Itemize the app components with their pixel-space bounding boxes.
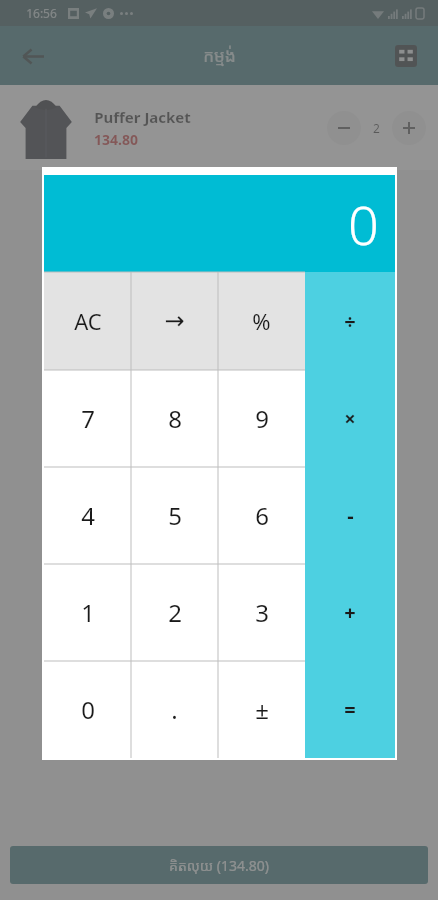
staticText: + <box>344 599 356 626</box>
staticText: 7 <box>81 402 95 435</box>
button[interactable]: 2 <box>131 564 218 661</box>
button[interactable]: ÷ <box>305 272 395 370</box>
button[interactable]: . <box>131 661 218 758</box>
staticText: គិតលុយ (134.80) <box>169 856 269 875</box>
button[interactable]: + <box>305 564 395 661</box>
staticText: = <box>344 696 356 723</box>
button[interactable]: 5 <box>131 467 218 564</box>
button[interactable]: 6 <box>218 467 305 564</box>
button[interactable]: AC <box>44 272 131 370</box>
staticText: . <box>171 693 178 726</box>
staticText: កម្មង់ <box>203 44 236 67</box>
staticText: 0 <box>348 187 379 261</box>
staticText: % <box>252 306 271 336</box>
staticText: 8 <box>168 402 182 435</box>
staticText: ± <box>255 693 269 726</box>
staticText: AC <box>74 306 102 336</box>
staticText: 3 <box>255 596 269 629</box>
staticText: 1 <box>81 596 95 629</box>
button[interactable]: 7 <box>44 370 131 467</box>
button[interactable]: - <box>305 467 395 564</box>
button[interactable]: គិតលុយ (134.80) <box>10 846 428 884</box>
button[interactable]: × <box>305 370 395 467</box>
staticText: 2 <box>373 120 380 136</box>
staticText: × <box>344 405 356 432</box>
button[interactable]: 8 <box>131 370 218 467</box>
staticText: 6 <box>255 499 269 532</box>
staticText: 2 <box>168 596 182 629</box>
staticText: 0 <box>81 693 95 726</box>
button[interactable]: Back <box>8 32 56 80</box>
staticText: → <box>164 307 185 335</box>
button[interactable]: 4 <box>44 467 131 564</box>
button[interactable]: 0 <box>44 661 131 758</box>
staticText: 134.80 <box>94 130 138 149</box>
button[interactable]: = <box>305 661 395 758</box>
button[interactable]: ± <box>218 661 305 758</box>
button[interactable]: 9 <box>218 370 305 467</box>
button[interactable]: → <box>131 272 218 370</box>
staticText: ÷ <box>344 308 356 335</box>
button[interactable]: Calculator <box>384 34 428 78</box>
button[interactable]: 1 <box>44 564 131 661</box>
button[interactable]: Increase quantity <box>392 111 426 145</box>
staticText: 9 <box>255 402 269 435</box>
staticText: 5 <box>168 499 182 532</box>
staticText: - <box>347 502 354 529</box>
staticText: Puffer Jacket <box>94 107 191 127</box>
button[interactable]: Decrease quantity <box>327 111 361 145</box>
staticText: 4 <box>81 499 95 532</box>
staticText: 16:56 <box>26 5 57 21</box>
button[interactable]: % <box>218 272 305 370</box>
button[interactable]: 3 <box>218 564 305 661</box>
